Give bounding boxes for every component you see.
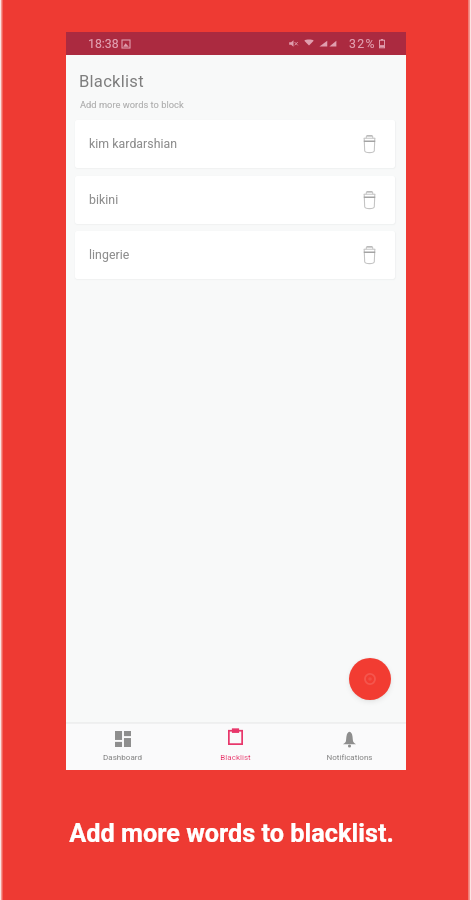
button[interactable]: bikini <box>75 176 395 224</box>
button[interactable]: kim kardarshian <box>75 120 395 168</box>
button[interactable]: lingerie <box>75 231 395 279</box>
button[interactable]: Delete bikini <box>357 188 381 212</box>
button[interactable]: Dashboard <box>66 723 179 770</box>
staticText: Blacklist <box>79 72 144 91</box>
staticText: Add more words to block <box>80 99 184 110</box>
staticText: Blacklist <box>179 753 292 762</box>
button[interactable]: Delete lingerie <box>357 243 381 267</box>
staticText: Notifications <box>293 753 406 762</box>
staticText: kim kardarshian <box>89 137 178 151</box>
button[interactable]: Delete kim kardarshian <box>357 132 381 156</box>
staticText: Add more words to blacklist. <box>0 819 467 849</box>
staticText: lingerie <box>89 248 130 262</box>
staticText: 32% <box>349 37 377 51</box>
button[interactable]: Add word <box>349 658 391 700</box>
button[interactable]: Notifications <box>293 723 406 770</box>
staticText: bikini <box>89 193 119 207</box>
button[interactable]: Blacklist <box>179 723 292 770</box>
staticText: 18:38 <box>88 37 119 51</box>
staticText: Dashboard <box>66 753 179 762</box>
